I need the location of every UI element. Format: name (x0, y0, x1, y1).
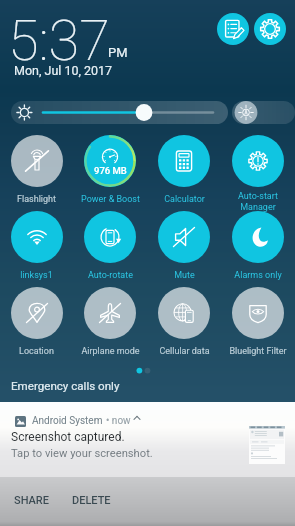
button[interactable]: Auto brightness (232, 101, 295, 124)
staticText: Calculator (164, 194, 205, 205)
staticText: Screenshot captured. (11, 430, 125, 444)
button[interactable]: linksys1 (11, 211, 63, 263)
button[interactable]: SHARE (2, 477, 60, 522)
button[interactable]: Airplane mode (84, 287, 136, 339)
button[interactable]: Bluelight Filter (232, 287, 284, 339)
button[interactable]: Auto-rotate (84, 211, 136, 263)
staticText: Cellular data (159, 346, 210, 357)
button[interactable]: Settings (254, 13, 286, 45)
staticText: Location (19, 346, 54, 357)
button[interactable]: Auto-start Manager (232, 135, 284, 187)
button[interactable]: DELETE (60, 477, 122, 522)
button[interactable]: Android System (0, 402, 295, 477)
staticText: Flashlight (17, 194, 56, 205)
button[interactable]: Mute (158, 211, 210, 263)
staticText: Tap to view your screenshot. (11, 447, 153, 460)
button[interactable]: Calculator (158, 135, 210, 187)
staticText: SHARE (14, 494, 49, 507)
button[interactable]: Brightness (11, 101, 228, 124)
button[interactable]: Power & Boost (84, 135, 136, 187)
staticText: Mute (174, 270, 195, 281)
staticText: Emergency calls only (11, 379, 120, 393)
button[interactable]: Flashlight (11, 135, 63, 187)
staticText: 976 MB (94, 165, 127, 176)
staticText: Auto-rotate (88, 270, 133, 281)
staticText: Android System (32, 415, 103, 427)
staticText: Mon, Jul 10, 2017 (14, 63, 113, 78)
staticText: DELETE (72, 494, 111, 507)
staticText: 5:37 (8, 8, 110, 74)
staticText: Bluelight Filter (229, 346, 287, 357)
button[interactable]: Location (11, 287, 63, 339)
staticText: Alarms only (234, 270, 282, 281)
button[interactable]: Cellular data (158, 287, 210, 339)
staticText: linksys1 (20, 270, 53, 281)
staticText: Auto-start Manager (238, 191, 278, 212)
button[interactable]: Alarms only (232, 211, 284, 263)
staticText: Power & Boost (81, 194, 140, 205)
button[interactable]: Edit quick settings (217, 13, 249, 45)
staticText: • now (106, 415, 131, 427)
staticText: Airplane mode (81, 346, 140, 357)
staticText: PM (108, 45, 128, 60)
